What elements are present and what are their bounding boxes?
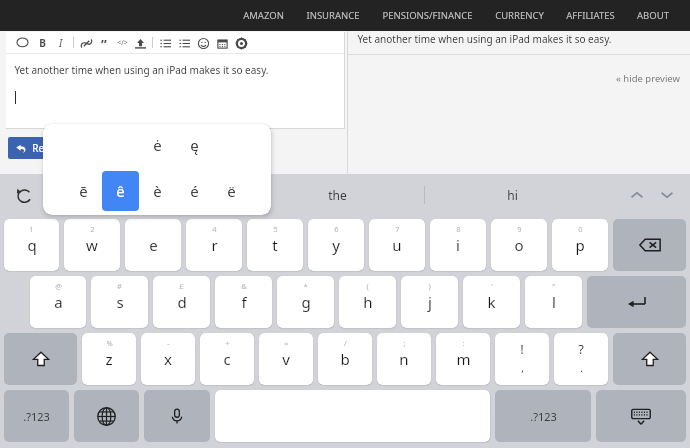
staticText: B [39,36,46,50]
staticText: ê [116,181,125,201]
button[interactable]: é [176,171,213,211]
button[interactable]: the [250,174,424,216]
button[interactable]: @ [30,276,86,328]
button[interactable]: ABOUT [626,5,680,26]
button[interactable]: ” [96,35,112,51]
button[interactable]: PENSIONS/FINANCE [371,5,484,26]
button[interactable]: Dictation [144,390,210,442]
button[interactable]: ! [495,333,549,385]
button[interactable]: ê [102,171,139,211]
button[interactable]: £ [153,276,210,328]
button[interactable]: Editor tool [157,35,173,51]
staticText: Yet another time when using an iPad make… [357,32,612,46]
staticText: 9 [517,224,522,234]
button[interactable]: 9 [491,219,547,271]
button[interactable]: Numbers [495,390,591,442]
button[interactable]: B [34,35,50,51]
staticText: 1 [29,224,34,234]
button[interactable]: Editor tool [195,35,211,51]
staticText: * [303,281,308,291]
button[interactable]: Editor tool [214,35,230,51]
button[interactable]: ) [401,276,458,328]
button[interactable]: / [318,333,372,385]
button[interactable]: AFFILIATES [555,5,626,26]
staticText: & [241,281,247,291]
button[interactable]: Editor tool [14,35,30,51]
button[interactable]: 4 [186,219,242,271]
button[interactable]: I [53,35,69,51]
button[interactable]: Undo [10,181,38,209]
button[interactable]: AMAZON [232,5,295,26]
button[interactable]: Return [587,276,686,328]
button[interactable]: e [125,219,181,271]
button[interactable]: % [82,333,136,385]
button[interactable]: ( [339,276,396,328]
button[interactable]: ë [213,171,250,211]
button[interactable]: - [141,333,195,385]
staticText: v [282,349,290,369]
staticText: n [399,349,409,369]
button[interactable]: 2 [64,219,120,271]
staticText: « hide preview [616,72,680,85]
button[interactable]: 0 [552,219,608,271]
staticText: h [363,292,373,312]
staticText: p [575,235,585,255]
button[interactable]: # [91,276,148,328]
staticText: e [149,235,158,255]
button[interactable]: Reply [8,137,66,159]
staticText: = [284,338,289,348]
button[interactable]: Shift [613,333,686,385]
button[interactable]: ę [176,125,213,165]
staticText: x [164,349,172,369]
button[interactable]: « hide preview [616,72,690,85]
button[interactable]: ? [554,333,608,385]
button[interactable]: Shift [4,333,77,385]
button[interactable]: ‘ [463,276,520,328]
button[interactable]: 6 [308,219,364,271]
button[interactable]: Previous [622,180,652,210]
button[interactable]: </> [114,35,130,51]
button[interactable]: 8 [430,219,486,271]
button[interactable]: * [277,276,334,328]
staticText: £ [179,281,184,291]
button[interactable]: “ [525,276,582,328]
staticText: ! [520,340,524,358]
button[interactable]: & [215,276,272,328]
button[interactable]: Editor tool [233,35,249,51]
button[interactable]: + [200,333,254,385]
staticText: é [190,181,199,201]
staticText: r [211,235,218,255]
staticText: PENSIONS/FINANCE [382,9,473,22]
button[interactable]: INSURANCE [295,5,371,26]
button[interactable]: 7 [369,219,425,271]
staticText: f [241,292,247,312]
staticText: k [487,292,496,312]
button[interactable]: 5 [247,219,303,271]
button[interactable]: Editor tool [176,35,192,51]
button[interactable]: è [139,171,176,211]
button[interactable]: Numbers [4,390,69,442]
button[interactable]: Backspace [613,219,686,271]
staticText: .?123 [530,409,557,424]
staticText: q [27,235,37,255]
button[interactable]: Editor tool [78,35,94,51]
button[interactable]: 1 [4,219,59,271]
button[interactable]: ē [65,171,102,211]
button[interactable]: Language [74,390,139,442]
staticText: 0 [578,224,583,234]
staticText: + [225,338,230,348]
button[interactable]: Hide keyboard [596,390,686,442]
staticText: y [332,235,340,255]
button[interactable]: Next [652,180,682,210]
button[interactable]: ė [139,125,176,165]
button[interactable]: ; [377,333,431,385]
button[interactable]: Editor tool [132,35,148,51]
button[interactable]: hi [425,174,600,216]
button[interactable]: : [436,333,490,385]
button[interactable]: CURRENCY [484,5,555,26]
button[interactable]: = [259,333,313,385]
